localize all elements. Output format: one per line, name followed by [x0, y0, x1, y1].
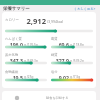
staticText: 196.0: [5, 41, 23, 48]
staticText: g /176.5g: [24, 43, 38, 47]
staticText: 栄養サマリー: [3, 6, 30, 12]
staticText: カロリー: [5, 18, 19, 22]
staticText: 糖質: [51, 53, 58, 57]
button[interactable]: くわしく見る>: [74, 5, 96, 12]
button[interactable]: [2, 12, 96, 88]
staticText: g /7.5g: [70, 75, 81, 79]
staticText: たんぱく質: [5, 37, 22, 41]
staticText: 脂質: [51, 37, 58, 41]
staticText: g /539.2g: [70, 59, 84, 63]
staticText: 9.02: [51, 74, 69, 81]
staticText: 327.9: [51, 57, 69, 64]
staticText: 塩分: [51, 70, 58, 74]
staticText: 347.3: [5, 57, 23, 64]
staticText: g /25g: [24, 75, 34, 79]
staticText: 食物繊維: [5, 70, 19, 74]
staticText: くわしく見る>: [74, 7, 96, 11]
staticText: 69.6: [51, 41, 69, 48]
staticText: 19.5: [5, 74, 23, 81]
staticText: g /118.8g: [70, 43, 84, 47]
button[interactable]: [2, 91, 96, 100]
button[interactable]: 栄養サマリー: [2, 5, 52, 12]
staticText: 2,912: [24, 16, 46, 26]
staticText: g /549.3g: [24, 59, 38, 63]
staticText: 炭水化物: [5, 53, 19, 57]
staticText: /3,994kcal: [47, 19, 64, 24]
staticText: 朝食を記録する: [46, 96, 69, 100]
